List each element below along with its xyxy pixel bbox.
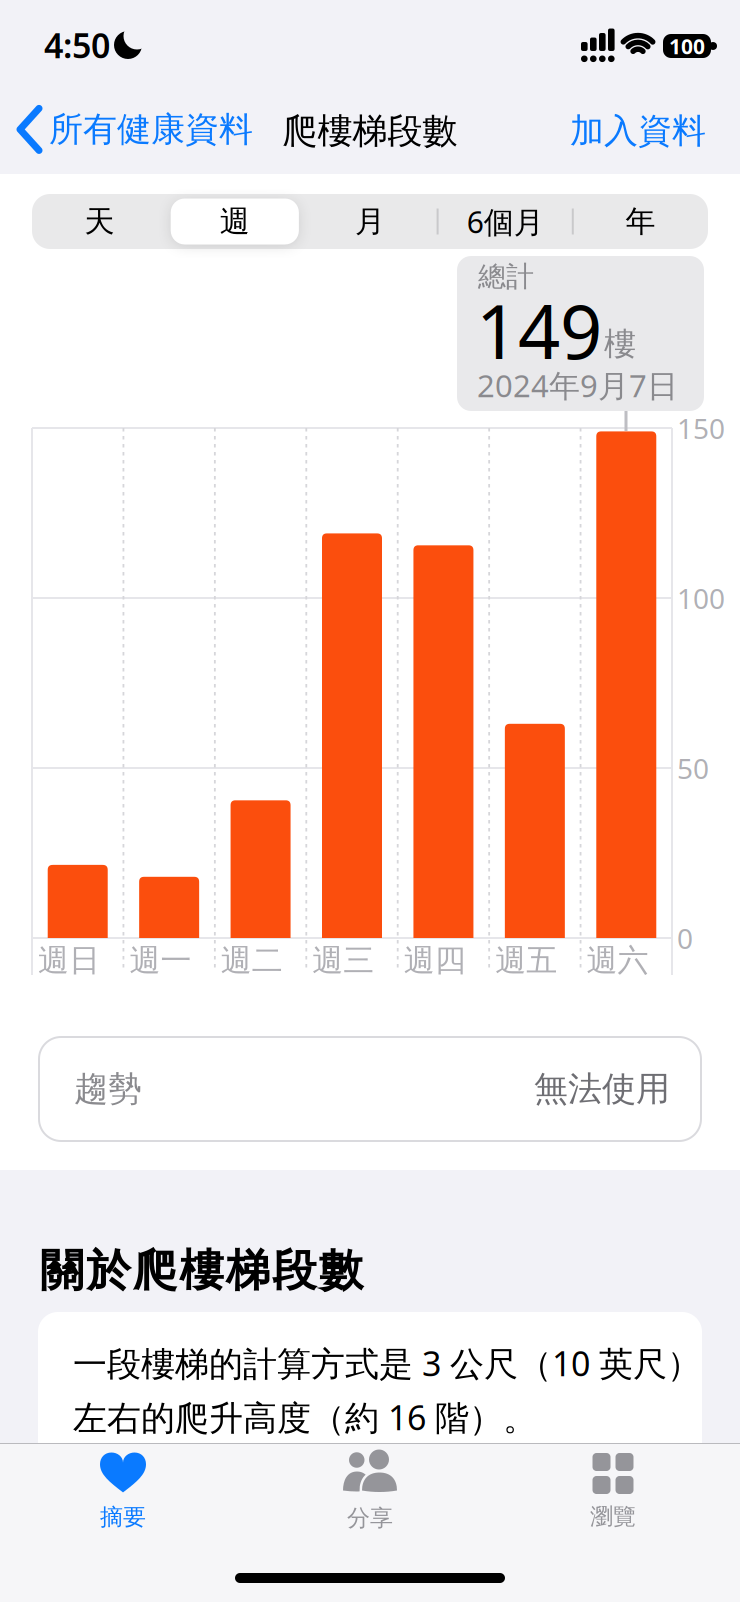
staticText: 樓 [604,324,636,364]
staticText: 4:50 [44,22,110,68]
staticText: 爬樓梯段數 [282,109,457,153]
staticText: 總計 [478,259,534,294]
button[interactable]: 摘要 [100,1452,146,1531]
staticText: 0 [677,919,693,957]
button[interactable]: 週 [220,203,250,240]
button[interactable]: 分享 [342,1451,398,1532]
button[interactable]: 月 [355,203,385,240]
staticText: 週一 [129,941,191,980]
staticText: 週三 [312,941,374,980]
staticText: 所有健康資料 [49,108,253,151]
button[interactable]: 所有健康資料 [20,108,253,151]
staticText: 149 [476,280,602,381]
staticText: 天 [85,203,115,240]
button[interactable]: 趨勢 [38,1036,702,1142]
staticText: 2024年9月7日 [477,364,678,406]
button[interactable]: 6個月 [467,201,544,242]
staticText: 6個月 [467,201,544,242]
staticText: 加入資料 [570,110,706,152]
staticText: 瀏覽 [590,1502,636,1531]
button[interactable]: 年 [625,203,655,240]
staticText: 150 [677,409,725,447]
staticText: 100 [677,579,725,617]
staticText: 年 [625,203,655,240]
staticText: 左右的爬升高度（約 16 階）。 [73,1394,537,1440]
staticText: 週四 [404,941,466,980]
staticText: 週二 [221,941,283,980]
staticText: 一段樓梯的計算方式是 3 公尺（10 英尺） [73,1340,701,1386]
staticText: 週日 [38,941,100,980]
button[interactable]: 加入資料 [570,110,706,152]
staticText: 摘要 [100,1502,146,1531]
staticText: 趨勢 [74,1068,142,1110]
button[interactable]: 天 [85,203,115,240]
staticText: 週 [220,203,250,240]
staticText: 50 [677,749,709,787]
staticText: 週六 [587,941,649,980]
staticText: 100 [669,32,705,60]
staticText: 週五 [495,941,557,980]
staticText: 無法使用 [534,1068,670,1110]
staticText: 月 [355,203,385,240]
button[interactable]: 瀏覽 [590,1453,636,1531]
staticText: 分享 [347,1503,393,1532]
staticText: 關於爬樓梯段數 [40,1243,363,1298]
